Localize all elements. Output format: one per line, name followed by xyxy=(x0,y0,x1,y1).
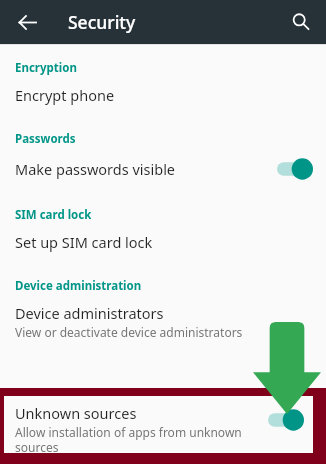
staticText: SIM card lock xyxy=(15,207,92,223)
staticText: Unknown sources xyxy=(15,403,137,423)
button[interactable]: Navigate back xyxy=(9,4,45,40)
staticText: Encryption xyxy=(15,60,77,76)
button[interactable]: Unknown sources xyxy=(4,396,313,453)
button[interactable]: Make passwords visible xyxy=(0,147,326,191)
other: Annotation arrow pointing to Unknown sou… xyxy=(253,322,321,414)
staticText: Encrypt phone xyxy=(15,85,115,105)
staticText: Passwords xyxy=(15,131,76,147)
button[interactable]: Search xyxy=(283,4,319,40)
staticText: Allow installation of apps from unknown … xyxy=(15,424,266,453)
button[interactable]: Toggle setting xyxy=(275,156,315,182)
staticText: Set up SIM card lock xyxy=(15,232,153,252)
staticText: Security xyxy=(68,10,136,34)
button[interactable]: Toggle setting xyxy=(266,407,306,433)
staticText: Device administration xyxy=(15,278,142,294)
button[interactable]: Device administrators xyxy=(0,294,326,349)
staticText: Device administrators xyxy=(15,303,164,323)
button[interactable]: Encrypt phone xyxy=(0,76,326,114)
button[interactable]: Set up SIM card lock xyxy=(0,223,326,261)
staticText: View or deactivate device administrators xyxy=(15,324,243,340)
staticText: Make passwords visible xyxy=(15,159,176,179)
